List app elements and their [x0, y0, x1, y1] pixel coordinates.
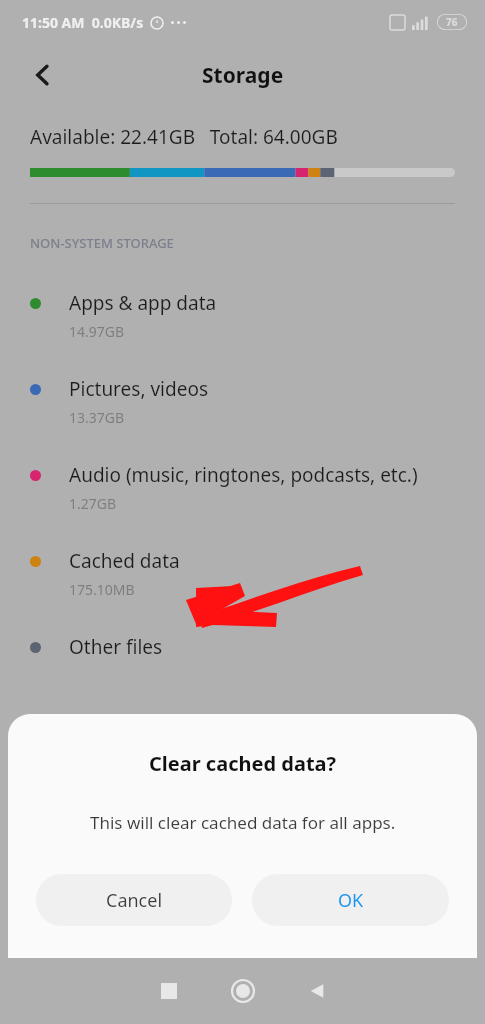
button[interactable]: Audio (music, ringtones, podcasts, etc.): [0, 462, 485, 548]
button[interactable]: Apps & app data: [0, 290, 485, 376]
staticText: Apps & app data: [69, 290, 217, 316]
staticText: 13.37GB: [69, 408, 125, 427]
staticText: Audio (music, ringtones, podcasts, etc.): [69, 462, 418, 488]
button[interactable]: OK: [252, 874, 449, 926]
staticText: NON-SYSTEM STORAGE: [30, 234, 174, 252]
staticText: 175.10MB: [69, 580, 135, 599]
staticText: Clear cached data?: [149, 750, 337, 777]
staticText: 14.97GB: [69, 322, 125, 341]
button[interactable]: Recents: [132, 958, 206, 1024]
staticText: Cached data: [69, 548, 180, 574]
staticText: Other files: [69, 634, 163, 660]
button[interactable]: Back: [22, 54, 64, 96]
staticText: Available: 22.41GB Total: 64.00GB: [30, 124, 338, 150]
staticText: 11:50 AM 0.0KB/s: [22, 13, 144, 32]
staticText: Storage: [202, 61, 284, 90]
button[interactable]: Other files: [0, 634, 485, 720]
staticText: Cancel: [106, 888, 163, 913]
button[interactable]: Cached data: [0, 548, 485, 634]
button[interactable]: Pictures, videos: [0, 376, 485, 462]
staticText: OK: [338, 888, 364, 913]
staticText: 1.27GB: [69, 494, 117, 513]
button[interactable]: Cancel: [36, 874, 232, 926]
staticText: 76: [446, 15, 458, 29]
staticText: This will clear cached data for all apps…: [90, 811, 396, 834]
button[interactable]: Back: [280, 958, 354, 1024]
button[interactable]: Home: [206, 958, 280, 1024]
staticText: Pictures, videos: [69, 376, 208, 402]
